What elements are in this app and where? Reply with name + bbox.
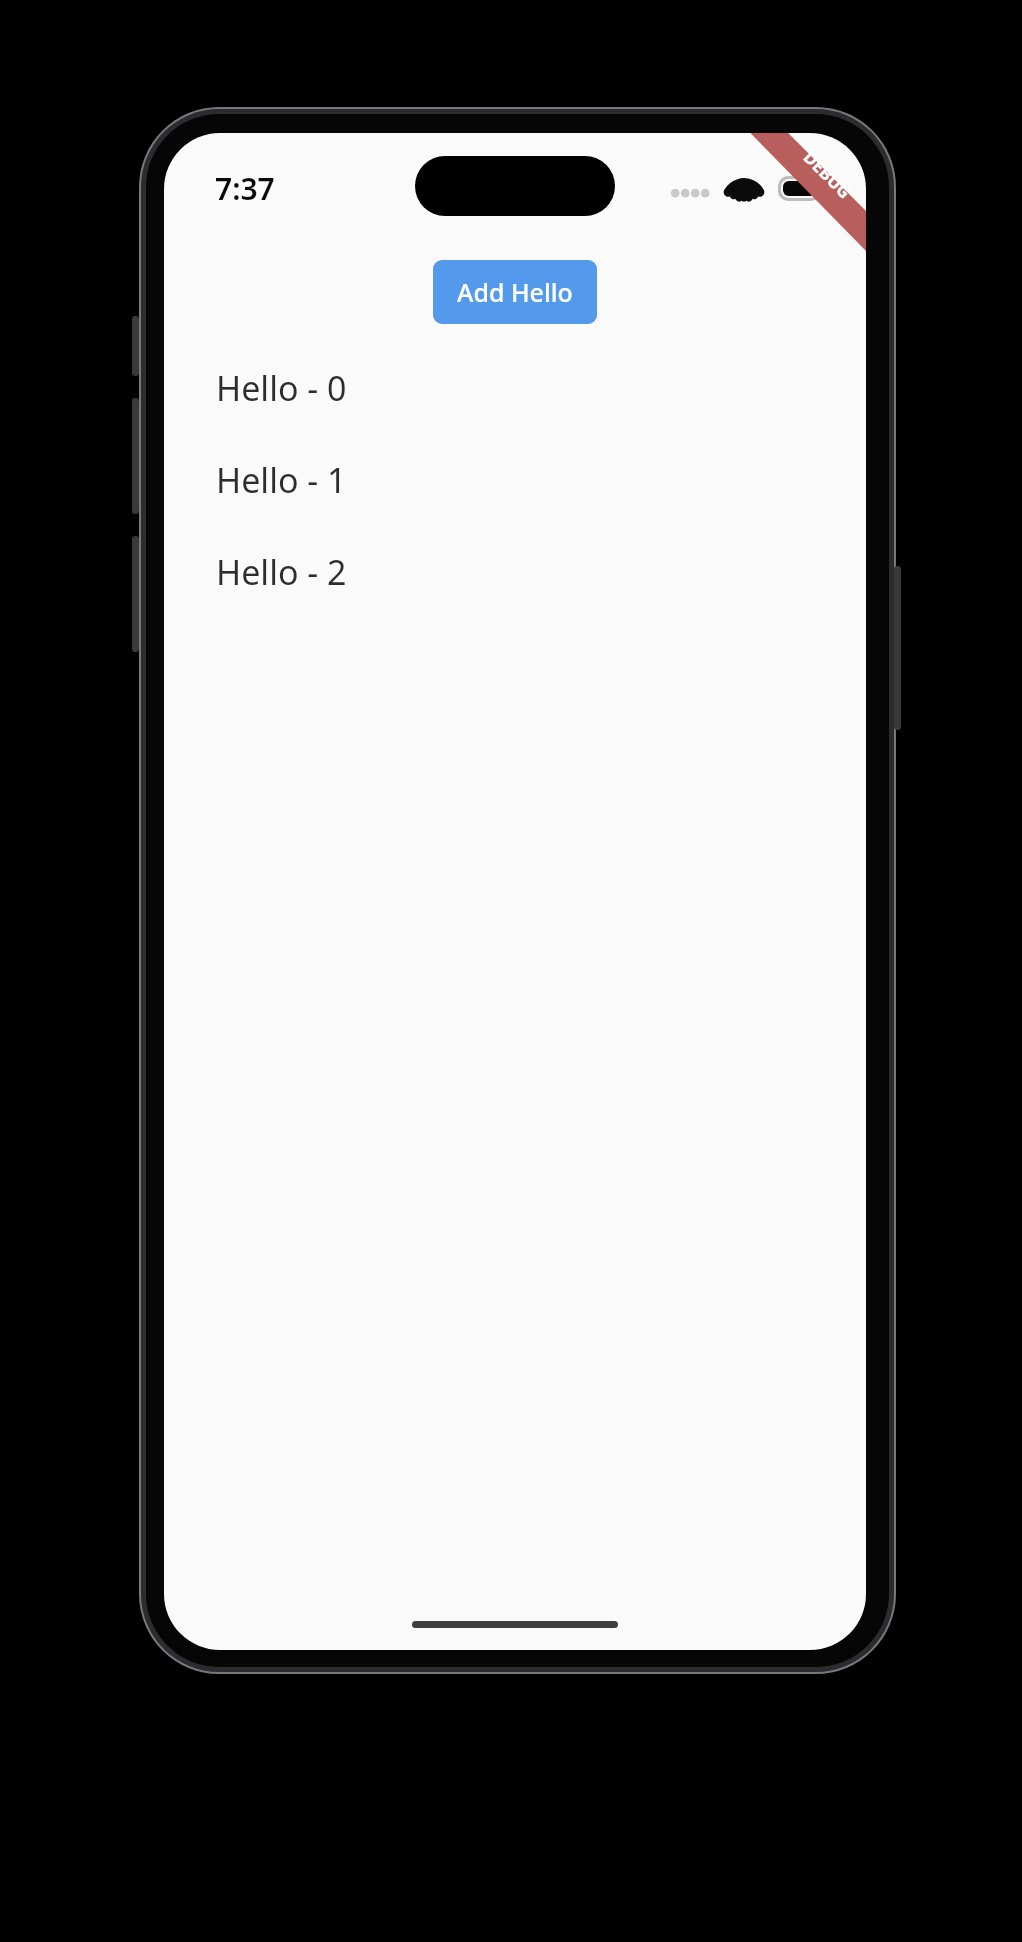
other: Cellular [671,181,711,197]
staticText: DEBUG [798,145,856,203]
other: Wi-Fi [726,175,762,202]
staticText: Hello - 1 [216,457,347,503]
staticText: Add Hello [457,275,573,309]
staticText: 7:37 [215,168,275,209]
staticText: Hello - 2 [216,549,347,595]
button[interactable]: Add Hello [433,260,597,324]
button[interactable]: Hello - 0 [164,342,866,434]
staticText: Hello - 0 [216,365,347,411]
button[interactable]: Hello - 2 [164,526,866,618]
other: Battery [778,176,826,201]
button[interactable]: Hello - 1 [164,434,866,526]
